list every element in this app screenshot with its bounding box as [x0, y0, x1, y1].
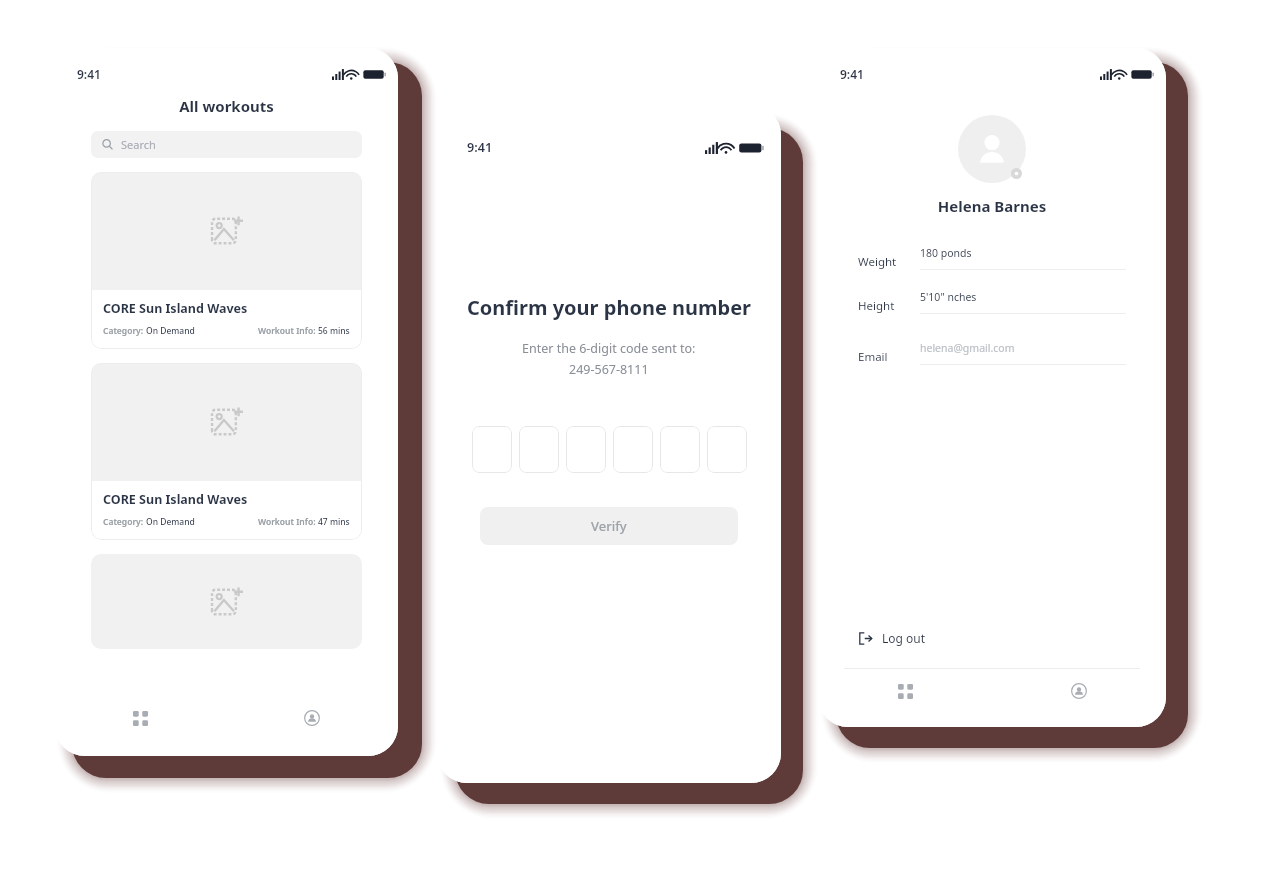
staticText: CORE Sun Island Waves [103, 491, 248, 508]
button[interactable]: CORE Sun Island Waves [91, 363, 362, 540]
staticText: Workout Info: [258, 516, 318, 528]
button[interactable]: Code digit [613, 426, 653, 473]
staticText: 9:41 [77, 66, 101, 82]
button[interactable]: Profile [992, 669, 1166, 713]
staticText: Log out [882, 630, 926, 646]
staticText: Confirm your phone number [467, 294, 752, 321]
staticText: On Demand [146, 325, 195, 337]
button[interactable]: Email [858, 341, 1126, 365]
button[interactable]: Code digit [472, 426, 512, 473]
staticText: 5'10" nches [920, 290, 977, 304]
button[interactable]: Verify [480, 507, 738, 545]
staticText: All workouts [55, 96, 398, 116]
staticText: Height [858, 298, 895, 314]
button[interactable]: Code digit [519, 426, 559, 473]
button[interactable]: Workouts [55, 696, 226, 740]
button[interactable]: Search [91, 131, 362, 158]
button[interactable] [91, 554, 362, 649]
staticText: 9:41 [467, 139, 493, 156]
staticText: On Demand [146, 516, 195, 528]
staticText: Search [121, 137, 156, 152]
staticText: Category: [103, 325, 146, 337]
button[interactable]: Profile [226, 696, 398, 740]
staticText: 180 ponds [920, 246, 972, 260]
button[interactable]: Code digit [707, 426, 747, 473]
staticText: CORE Sun Island Waves [103, 300, 248, 317]
button[interactable]: Height [858, 290, 1126, 314]
staticText: 249-567-8111 [569, 361, 649, 378]
button[interactable]: Code digit [660, 426, 700, 473]
button[interactable]: Workouts [818, 669, 992, 713]
staticText: helena@gmail.com [920, 341, 1015, 355]
staticText: 56 mins [318, 325, 350, 337]
staticText: Helena Barnes [818, 196, 1166, 216]
button[interactable]: Profile photo [958, 115, 1026, 183]
staticText: 9:41 [840, 66, 864, 82]
staticText: Category: [103, 516, 146, 528]
button[interactable]: Code digit [566, 426, 606, 473]
staticText: Email [858, 349, 888, 365]
button[interactable]: Weight [858, 246, 1126, 270]
button[interactable]: Log out [858, 630, 926, 646]
staticText: Weight [858, 254, 897, 270]
staticText: Workout Info: [258, 325, 318, 337]
staticText: Verify [591, 517, 627, 535]
button[interactable]: CORE Sun Island Waves [91, 172, 362, 349]
staticText: 47 mins [318, 516, 350, 528]
staticText: Enter the 6-digit code sent to: [522, 340, 696, 357]
